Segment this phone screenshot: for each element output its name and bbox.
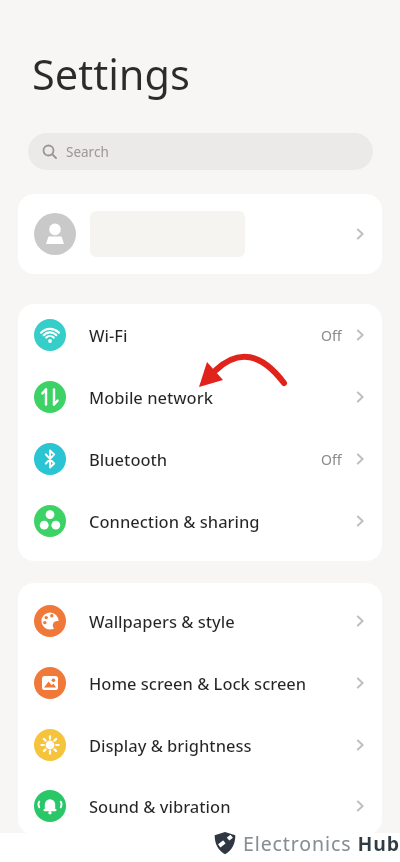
- staticText: Off: [321, 326, 342, 345]
- button[interactable]: Sound & vibration: [18, 776, 382, 835]
- staticText: Connection & sharing: [89, 510, 260, 532]
- button[interactable]: Display & brightness: [18, 714, 382, 776]
- staticText: Settings: [32, 46, 190, 103]
- button[interactable]: Bluetooth: [18, 428, 382, 490]
- button[interactable]: Wallpapers & style: [18, 590, 382, 652]
- staticText: Display & brightness: [89, 734, 252, 756]
- staticText: Sound & vibration: [89, 795, 231, 817]
- staticText: Off: [321, 450, 342, 469]
- staticText: Bluetooth: [89, 448, 168, 470]
- staticText: Wallpapers & style: [89, 610, 235, 632]
- button[interactable]: Mobile network: [18, 366, 382, 428]
- button[interactable]: Search: [28, 133, 373, 170]
- staticText: Wi-Fi: [89, 324, 128, 346]
- button[interactable]: Connection & sharing: [18, 490, 382, 552]
- button[interactable]: Wi-Fi: [18, 304, 382, 366]
- button[interactable]: [18, 194, 382, 274]
- staticText: Electronics Hub: [243, 830, 400, 857]
- staticText: Home screen & Lock screen: [89, 672, 307, 694]
- staticText: Mobile network: [89, 386, 213, 408]
- staticText: Search: [66, 143, 109, 161]
- button[interactable]: Home screen & Lock screen: [18, 652, 382, 714]
